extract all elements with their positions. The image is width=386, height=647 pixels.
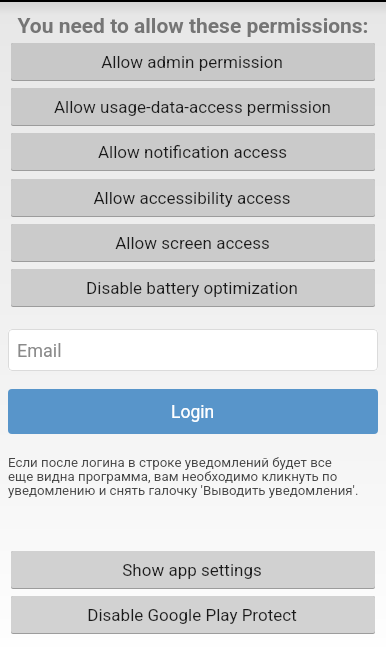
button[interactable]: Allow admin permission	[11, 43, 375, 80]
button[interactable]: Allow notification access	[11, 133, 375, 170]
button[interactable]: Allow usage-data-access permission	[11, 88, 375, 125]
staticText: Disable battery optimization	[86, 278, 298, 298]
staticText: Если после логина в строке уведомлений б…	[8, 455, 359, 499]
button[interactable]: Allow accessibility access	[11, 179, 375, 216]
staticText: Email	[17, 340, 62, 361]
staticText: Allow usage-data-access permission	[54, 97, 331, 117]
button[interactable]: Disable Google Play Protect	[11, 596, 375, 633]
staticText: Show app settings	[122, 560, 262, 580]
staticText: Allow accessibility access	[93, 188, 291, 208]
staticText: Allow notification access	[98, 142, 287, 162]
button[interactable]: Disable battery optimization	[11, 269, 375, 306]
button[interactable]: Email	[8, 329, 378, 371]
button[interactable]: Show app settings	[11, 551, 375, 588]
staticText: You need to allow these permissions:	[17, 14, 369, 39]
staticText: Disable Google Play Protect	[87, 605, 297, 625]
staticText: Allow admin permission	[101, 52, 283, 72]
staticText: Allow screen access	[115, 233, 270, 253]
button[interactable]: Allow screen access	[11, 224, 375, 261]
staticText: Login	[171, 402, 215, 423]
button[interactable]: Login	[8, 389, 378, 434]
